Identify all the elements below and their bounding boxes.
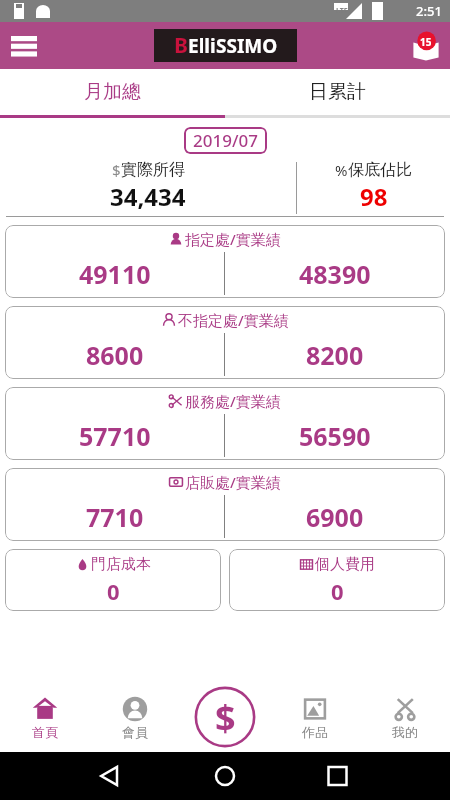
button[interactable]: 門店成本 (5, 549, 221, 611)
button[interactable]: 2019/07 (184, 127, 267, 154)
staticText: 店販處/實業績 (185, 472, 281, 492)
button[interactable]: Notifications (402, 22, 450, 69)
staticText: $ (112, 160, 121, 180)
staticText: 49110 (79, 257, 151, 291)
button[interactable]: 會員 (90, 684, 180, 752)
staticText: 月加總 (84, 80, 141, 104)
button[interactable]: Money (194, 686, 256, 748)
staticText: 6900 (306, 500, 364, 534)
staticText: 2:51 (416, 2, 442, 20)
staticText: Elli (188, 33, 216, 59)
staticText: 57710 (79, 419, 151, 453)
staticText: 首頁 (32, 724, 58, 740)
button[interactable]: 個人費用 (229, 549, 445, 611)
staticText: 我的 (392, 724, 418, 740)
staticText: 指定處/實業績 (185, 229, 281, 249)
staticText: 48390 (299, 257, 371, 291)
button[interactable]: 首頁 (0, 684, 90, 752)
staticText: 門店成本 (91, 555, 151, 574)
staticText: $ (215, 693, 236, 742)
staticText: LTE (336, 6, 348, 16)
button[interactable]: 不指定處/實業績 (5, 306, 445, 379)
staticText: 7710 (86, 500, 144, 534)
staticText: 0 (107, 576, 120, 606)
staticText: 服務處/實業績 (185, 391, 281, 411)
staticText: 會員 (122, 724, 148, 740)
button[interactable]: 服務處/實業績 (5, 387, 445, 460)
staticText: % (335, 160, 348, 180)
button[interactable]: 店販處/實業績 (5, 468, 445, 541)
staticText: B (174, 31, 188, 60)
staticText: 56590 (299, 419, 371, 453)
staticText: 98 (360, 180, 388, 213)
staticText: 實際所得 (121, 160, 185, 180)
staticText: 作品 (302, 724, 328, 740)
staticText: 0 (331, 576, 344, 606)
staticText: 日累計 (309, 80, 366, 104)
button[interactable]: 指定處/實業績 (5, 225, 445, 298)
staticText: 2019/07 (193, 129, 258, 152)
button[interactable]: 日累計 (225, 69, 450, 115)
button[interactable]: 我的 (360, 684, 450, 752)
staticText: 15 (420, 35, 432, 49)
staticText: 不指定處/實業績 (178, 310, 289, 330)
staticText: 8200 (306, 338, 364, 372)
staticText: 保底佔比 (348, 160, 412, 180)
button[interactable]: 月加總 (0, 69, 225, 115)
button[interactable]: 作品 (270, 684, 360, 752)
button[interactable]: Menu (0, 22, 48, 69)
staticText: 34,434 (110, 180, 186, 213)
staticText: 個人費用 (315, 555, 375, 574)
staticText: 8600 (86, 338, 144, 372)
staticText: SSIMO (216, 33, 278, 59)
